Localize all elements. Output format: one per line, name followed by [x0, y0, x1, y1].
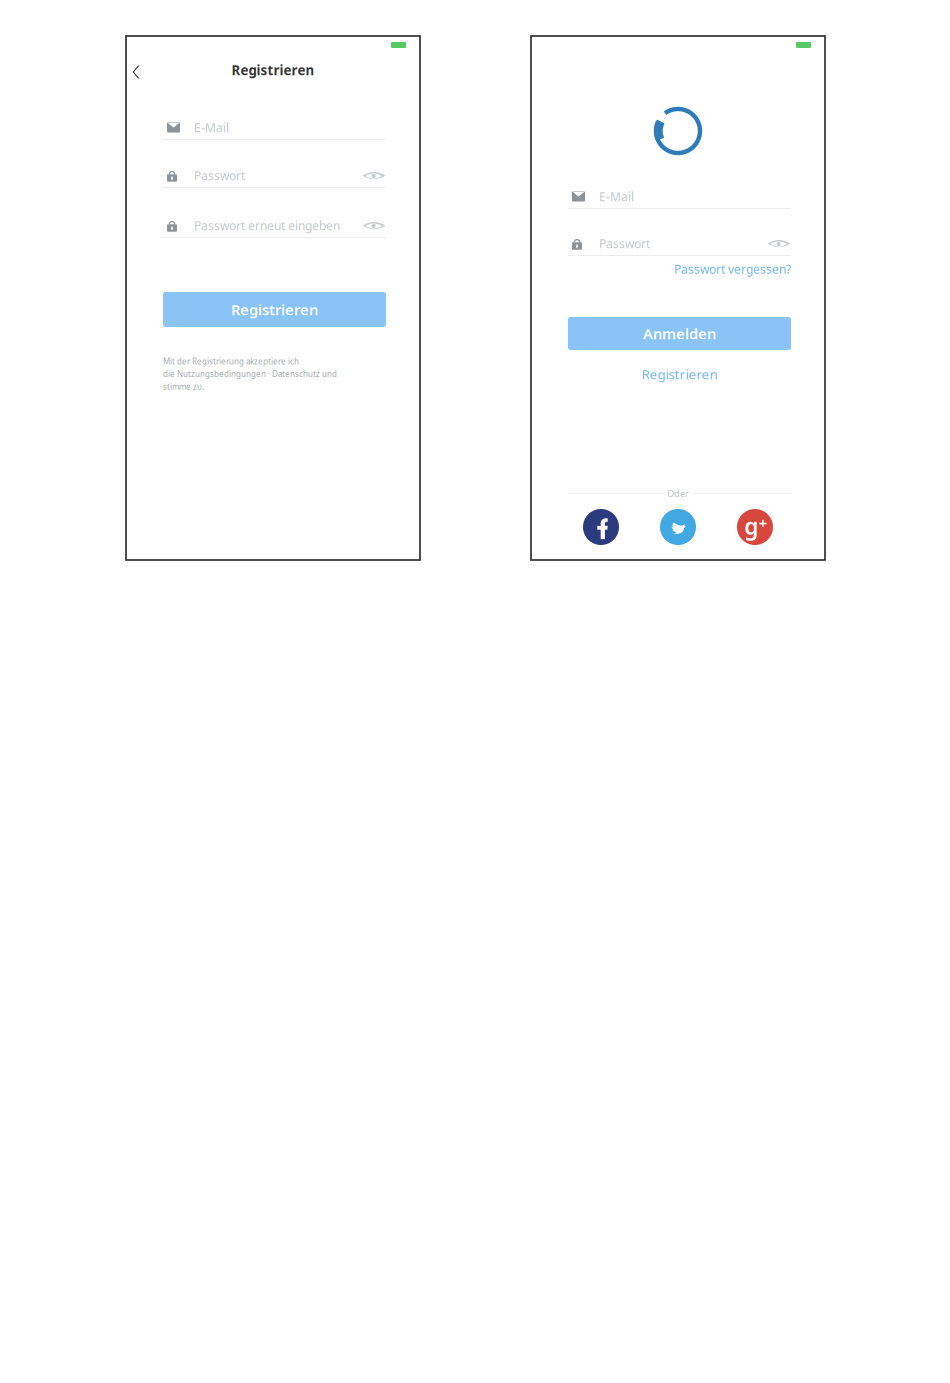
button[interactable]: Back	[125, 59, 147, 85]
staticText: E-Mail	[599, 188, 634, 204]
staticText: Registrieren	[641, 365, 717, 383]
button[interactable]: E-Mail	[568, 190, 791, 203]
staticText: g	[744, 511, 758, 541]
staticText: Oder	[667, 487, 689, 500]
staticText: Registrieren	[231, 61, 314, 79]
staticText: Passwort	[194, 167, 245, 183]
button[interactable]: Show password	[362, 171, 386, 180]
staticText: die Nutzungsbedingungen · Datenschutz un…	[163, 369, 337, 379]
staticText: Registrieren	[231, 300, 318, 319]
staticText: Passwort	[599, 235, 650, 251]
button[interactable]: Passwort	[163, 169, 362, 182]
button[interactable]: Show password	[362, 221, 386, 230]
staticText: Anmelden	[643, 324, 716, 343]
button[interactable]: Passwort	[568, 237, 767, 250]
button[interactable]: Passwort erneut eingeben	[163, 219, 362, 232]
button[interactable]: Sign in with Twitter	[660, 509, 696, 545]
staticText: stimme zu.	[163, 381, 204, 392]
button[interactable]: Sign in with Facebook	[583, 509, 619, 545]
button[interactable]: Passwort vergessen?	[568, 263, 791, 275]
button[interactable]: E-Mail	[163, 121, 386, 134]
button[interactable]: Registrieren	[568, 367, 791, 381]
button[interactable]: Registrieren	[163, 292, 386, 327]
button[interactable]: Show password	[767, 239, 791, 248]
staticText: Passwort erneut eingeben	[194, 217, 340, 233]
staticText: E-Mail	[194, 119, 229, 135]
button[interactable]: Sign in with Google Plus	[737, 509, 773, 545]
button[interactable]: Anmelden	[568, 317, 791, 350]
staticText: +	[759, 513, 767, 533]
staticText: Passwort vergessen?	[674, 261, 791, 277]
staticText: Mit der Registrierung akzeptiere ich	[163, 356, 299, 367]
